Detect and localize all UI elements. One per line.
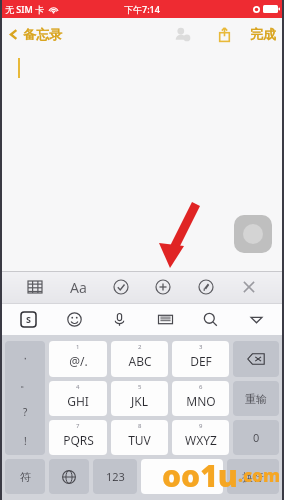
staticText: 。 <box>20 377 30 390</box>
button[interactable]: 4 <box>49 381 107 416</box>
staticText: oo1u <box>162 455 238 496</box>
staticText: ， <box>20 349 30 362</box>
staticText: 下午7:14 <box>124 3 160 15</box>
staticText: ABC <box>128 353 152 369</box>
staticText: .com <box>238 464 280 487</box>
button[interactable]: 符 <box>5 459 45 494</box>
button[interactable]: Handwriting <box>234 215 272 253</box>
button[interactable]: 7 <box>49 420 107 455</box>
button[interactable]: 0 <box>233 420 279 455</box>
button[interactable]: 2 <box>111 341 168 377</box>
staticText: 完成 <box>250 26 276 42</box>
button[interactable]: Delete <box>233 341 279 377</box>
staticText: TUV <box>128 432 151 448</box>
button[interactable]: 1 <box>49 341 107 377</box>
button[interactable]: 5 <box>111 381 168 416</box>
staticText: GHI <box>67 393 89 409</box>
button[interactable]: Voice <box>107 307 131 331</box>
staticText: 0 <box>253 430 260 445</box>
button[interactable]: Close <box>236 274 262 300</box>
button[interactable]: 完成 <box>248 26 278 42</box>
button[interactable]: 6 <box>172 381 229 416</box>
staticText: 6 <box>199 383 203 391</box>
button[interactable]: Checklist <box>108 274 134 300</box>
button[interactable] <box>141 459 223 494</box>
staticText: 8 <box>138 422 142 430</box>
button[interactable]: 。 <box>5 369 45 397</box>
button[interactable]: Markup <box>193 274 219 300</box>
staticText: 2 <box>138 343 142 351</box>
staticText: S <box>26 313 31 325</box>
staticText: 换行 <box>242 470 264 484</box>
staticText: 备忘录 <box>23 26 62 42</box>
staticText: ! <box>24 434 27 448</box>
button[interactable]: 3 <box>172 341 229 377</box>
button[interactable]: Handwriting <box>153 307 177 331</box>
staticText: 7 <box>76 422 80 430</box>
button[interactable]: Switch language <box>49 459 89 494</box>
button[interactable]: 123 <box>93 459 137 494</box>
staticText: @/. <box>69 353 88 369</box>
button[interactable]: ， <box>5 341 45 369</box>
button[interactable]: 备忘录 <box>7 26 62 42</box>
staticText: MNO <box>186 393 216 409</box>
staticText: 重输 <box>245 392 267 406</box>
staticText: 4 <box>76 383 80 391</box>
button[interactable]: 重输 <box>233 381 279 416</box>
button[interactable]: Table <box>22 274 48 300</box>
button[interactable]: Sogou <box>16 307 40 331</box>
staticText: 符 <box>20 470 31 484</box>
button[interactable]: 换行 <box>227 459 279 494</box>
button[interactable]: Text format <box>65 274 91 300</box>
staticText: 无 SIM 卡 <box>5 3 45 15</box>
staticText: WXYZ <box>185 432 217 448</box>
staticText: 123 <box>106 469 125 484</box>
staticText: ? <box>23 405 28 419</box>
staticText: 5 <box>138 383 142 391</box>
staticText: 3 <box>199 343 203 351</box>
button[interactable]: 9 <box>172 420 229 455</box>
button[interactable]: Search <box>198 307 222 331</box>
button[interactable]: ? <box>5 397 45 426</box>
staticText: PQRS <box>63 432 94 448</box>
button[interactable]: Share <box>212 22 236 46</box>
staticText: Aa <box>70 278 87 297</box>
button[interactable]: Add attachment <box>150 274 176 300</box>
staticText: DEF <box>190 353 212 369</box>
button[interactable]: 8 <box>111 420 168 455</box>
staticText: 1 <box>76 343 80 351</box>
button[interactable]: Emoji <box>62 307 86 331</box>
button[interactable]: ! <box>5 426 45 455</box>
button[interactable]: More <box>244 307 268 331</box>
staticText: JKL <box>131 393 148 409</box>
staticText: 9 <box>199 422 203 430</box>
button[interactable]: Add people <box>170 22 194 46</box>
